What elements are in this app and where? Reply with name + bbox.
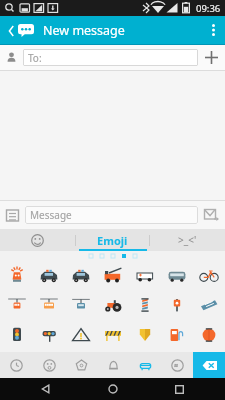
button[interactable]: Emoji 9	[33, 290, 65, 320]
button[interactable]: Kaomoji	[150, 229, 225, 251]
button[interactable]: Emoji 19	[129, 320, 161, 350]
button[interactable]: Emoji 21	[193, 320, 225, 350]
staticText: >_<'	[178, 233, 197, 247]
button[interactable]: Emoji 5	[129, 260, 161, 290]
button[interactable]: Symbols	[161, 352, 193, 378]
button[interactable]: Contact	[0, 52, 23, 63]
button[interactable]: Nature	[65, 352, 97, 378]
button[interactable]: Emoji 17	[65, 320, 97, 350]
button[interactable]: Emoji 18	[97, 320, 129, 350]
button[interactable]: Emoji 7	[193, 260, 225, 290]
button[interactable]: Attach	[0, 209, 25, 222]
button[interactable]: Emoji 3	[65, 260, 97, 290]
button[interactable]: More options	[201, 16, 225, 44]
button[interactable]: Smileys	[33, 352, 65, 378]
button[interactable]: Emoji 13	[161, 290, 193, 320]
button[interactable]: Home	[93, 378, 133, 400]
staticText: Message	[30, 208, 72, 222]
button[interactable]: Recent	[0, 352, 33, 378]
button[interactable]: Emoji 6	[161, 260, 193, 290]
button[interactable]: Emoji 12	[129, 290, 161, 320]
button[interactable]: Recent apps	[159, 378, 199, 400]
button[interactable]: Emoji 1	[0, 260, 33, 290]
button[interactable]: Emoticons	[0, 229, 75, 251]
button[interactable]: Emoji 16	[33, 320, 65, 350]
button[interactable]: Emoji 11	[97, 290, 129, 320]
button[interactable]: Delete	[193, 352, 225, 378]
staticText: To:	[28, 51, 42, 65]
button[interactable]: Back	[26, 378, 66, 400]
button[interactable]: Emoji 2	[33, 260, 65, 290]
button[interactable]: Emoji 10	[65, 290, 97, 320]
button[interactable]: Emoji 20	[161, 320, 193, 350]
button[interactable]: Emoji 4	[97, 260, 129, 290]
button[interactable]: Back	[5, 20, 37, 41]
button[interactable]: Emoji 15	[0, 320, 33, 350]
button[interactable]: Emoji 8	[0, 290, 33, 320]
button[interactable]: Send	[198, 209, 225, 221]
button[interactable]: To:	[23, 49, 198, 66]
button[interactable]: Emoji	[75, 229, 150, 251]
button[interactable]: Places	[129, 352, 161, 378]
staticText: Emoji	[97, 233, 128, 248]
staticText: New message	[43, 22, 125, 39]
button[interactable]: Objects	[97, 352, 129, 378]
button[interactable]: Message	[25, 206, 198, 224]
staticText: 09:36	[196, 2, 221, 15]
button[interactable]: Emoji 14	[193, 290, 225, 320]
button[interactable]: Add recipient	[198, 51, 225, 64]
